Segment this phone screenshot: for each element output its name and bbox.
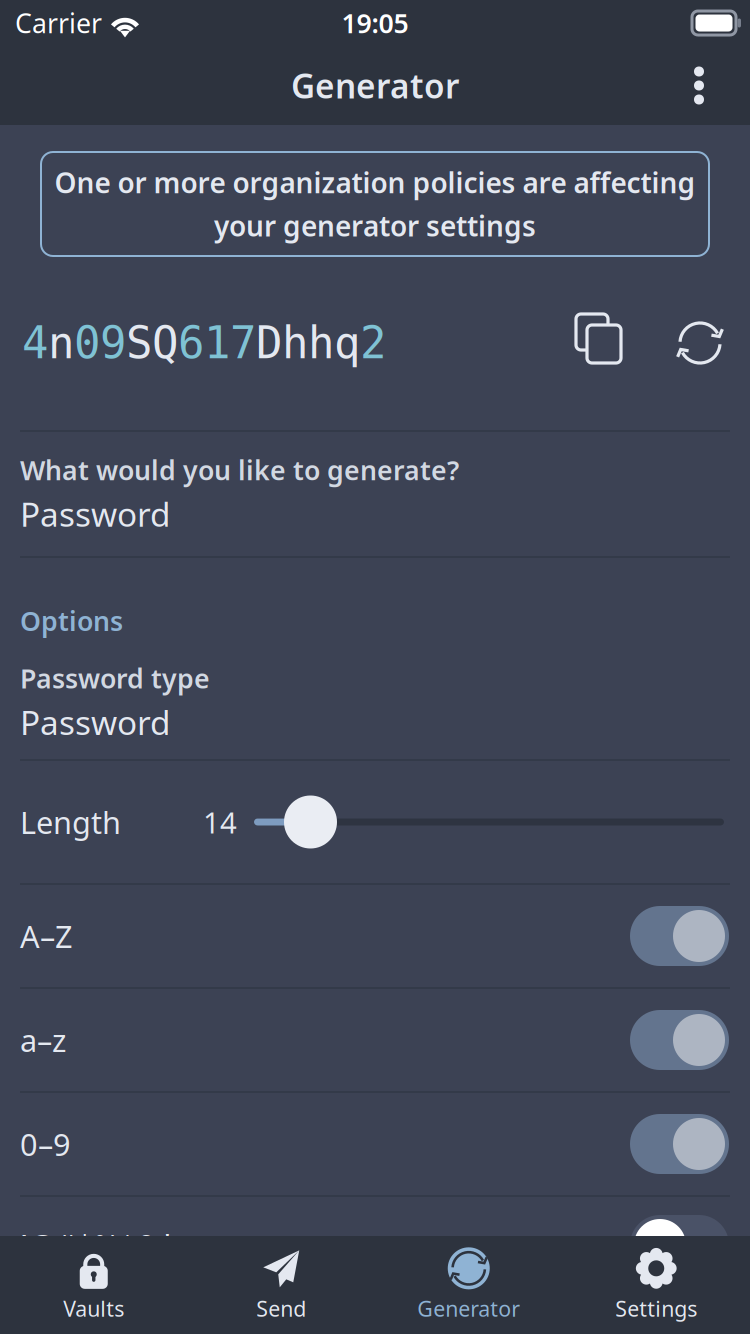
staticText: Dhhq (256, 318, 360, 368)
button[interactable]: A–Z (0, 885, 750, 987)
staticText: 4 (22, 318, 48, 368)
staticText: Send (256, 1294, 306, 1323)
staticText: 19:05 (341, 5, 408, 41)
staticText: 617 (178, 318, 256, 368)
button[interactable]: Regenerate password (674, 317, 726, 369)
staticText: n (48, 318, 74, 368)
button[interactable]: a–z (0, 989, 750, 1091)
staticText: your generator settings (214, 207, 536, 244)
staticText: Password (20, 700, 171, 744)
button[interactable]: 0–9 (0, 1093, 750, 1195)
staticText: a–z (20, 1020, 66, 1060)
staticText: Length (20, 802, 121, 842)
staticText: !@#$%^&* (20, 1225, 176, 1265)
staticText: Options (20, 603, 123, 638)
staticText: Carrier (15, 5, 102, 41)
button[interactable]: Generator (375, 1236, 562, 1334)
button[interactable]: !@#$%^&* (0, 1197, 750, 1293)
staticText: Generator (291, 63, 459, 108)
staticText: One or more organization policies are af… (54, 164, 695, 201)
staticText: What would you like to generate? (20, 452, 459, 488)
staticText: Vaults (63, 1294, 124, 1323)
staticText: 09 (74, 318, 126, 368)
staticText: 0–9 (20, 1124, 71, 1164)
staticText: Password type (20, 660, 210, 696)
staticText: Settings (615, 1294, 697, 1323)
staticText: SQ (126, 318, 178, 368)
button[interactable]: More options (677, 63, 721, 107)
button[interactable]: Vaults (0, 1236, 187, 1334)
staticText: Password (20, 492, 171, 536)
staticText: 2 (360, 318, 386, 368)
staticText: A–Z (20, 916, 73, 956)
button[interactable]: Send (187, 1236, 375, 1334)
staticText: 14 (203, 802, 237, 841)
button[interactable]: Settings (562, 1236, 750, 1334)
staticText: Generator (417, 1294, 520, 1323)
button[interactable]: Copy password (576, 314, 634, 372)
